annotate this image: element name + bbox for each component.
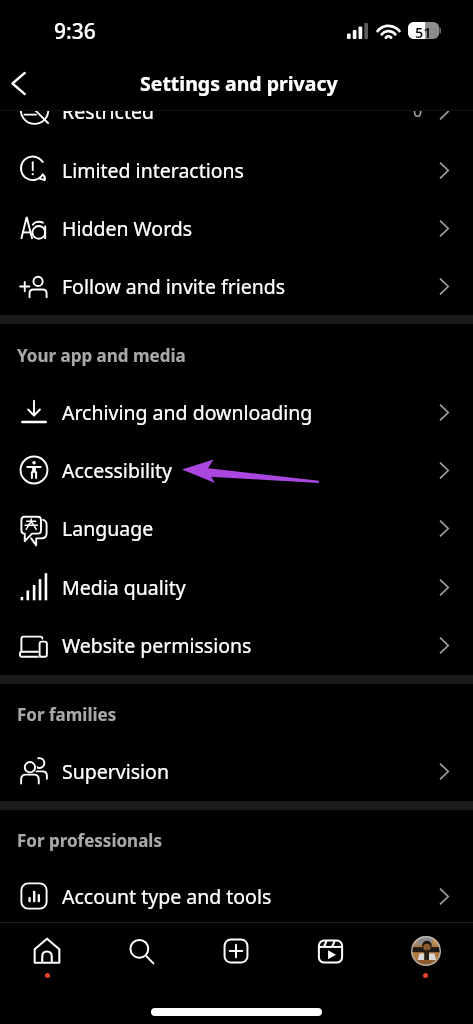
staticText: Limited interactions: [62, 157, 244, 184]
staticText: For professionals: [17, 829, 162, 852]
staticText: Supervision: [62, 758, 169, 785]
staticText: Settings and privacy: [140, 70, 338, 97]
staticText: Restricted: [62, 98, 154, 125]
button[interactable]: Restricted: [0, 82, 473, 140]
button[interactable]: Follow and invite friends: [0, 257, 473, 315]
staticText: Your app and media: [17, 344, 186, 367]
staticText: Website permissions: [62, 632, 252, 659]
button[interactable]: Search: [94, 923, 188, 983]
staticText: 0: [413, 100, 423, 122]
button[interactable]: Language: [0, 499, 473, 557]
staticText: Media quality: [62, 574, 186, 601]
button[interactable]: Archiving and downloading: [0, 383, 473, 441]
button[interactable]: Account type and tools: [0, 867, 473, 925]
staticText: Hidden Words: [62, 215, 193, 242]
button[interactable]: Limited interactions: [0, 141, 473, 199]
button[interactable]: Accessibility: [0, 441, 473, 499]
staticText: 9:36: [54, 17, 96, 46]
button[interactable]: Hidden Words: [0, 199, 473, 257]
button[interactable]: Website permissions: [0, 616, 473, 674]
button[interactable]: New post: [188, 923, 283, 983]
button[interactable]: Profile: [378, 923, 473, 983]
button[interactable]: Back: [0, 60, 41, 106]
staticText: Account type and tools: [62, 883, 272, 910]
staticText: Archiving and downloading: [62, 399, 313, 426]
button[interactable]: Home: [0, 923, 94, 983]
staticText: Language: [62, 515, 154, 542]
button[interactable]: Reels: [283, 923, 378, 983]
staticText: Accessibility: [62, 457, 172, 484]
staticText: For families: [17, 703, 117, 726]
button[interactable]: Media quality: [0, 558, 473, 616]
staticText: Follow and invite friends: [62, 273, 286, 300]
button[interactable]: Supervision: [0, 742, 473, 800]
staticText: 51: [415, 22, 432, 39]
